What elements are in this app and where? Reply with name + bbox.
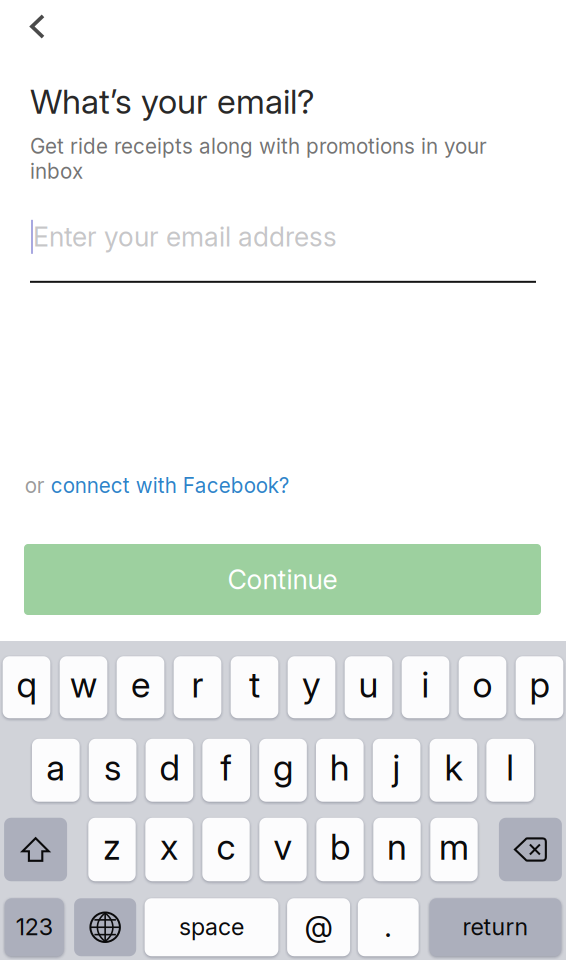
staticText: r xyxy=(191,663,203,706)
staticText: i xyxy=(421,663,429,706)
staticText: @ xyxy=(305,908,333,944)
button[interactable]: z xyxy=(88,818,136,881)
staticText: h xyxy=(330,746,350,789)
button[interactable]: u xyxy=(345,656,392,718)
staticText: p xyxy=(529,663,549,706)
staticText: t xyxy=(249,663,260,706)
button[interactable]: return xyxy=(429,898,561,956)
button[interactable]: m xyxy=(430,818,478,881)
button[interactable]: c xyxy=(202,818,250,881)
staticText: y xyxy=(302,663,321,706)
button[interactable]: Next keyboard xyxy=(74,898,136,956)
staticText: a xyxy=(46,746,65,789)
button[interactable]: b xyxy=(316,818,364,881)
button[interactable]: i xyxy=(402,656,449,718)
button[interactable]: space xyxy=(145,898,278,956)
staticText: k xyxy=(444,746,462,789)
staticText: return xyxy=(462,913,528,941)
button[interactable]: Shift xyxy=(4,818,67,881)
button[interactable]: connect with Facebook? xyxy=(51,473,290,498)
button[interactable]: n xyxy=(373,818,421,881)
staticText: l xyxy=(506,746,514,789)
button[interactable]: t xyxy=(231,656,278,718)
button[interactable]: k xyxy=(430,739,477,802)
button[interactable]: x xyxy=(145,818,193,881)
button[interactable]: f xyxy=(202,739,250,802)
staticText: What’s your email? xyxy=(30,81,315,122)
staticText: v xyxy=(273,826,292,868)
staticText: 123 xyxy=(16,913,53,941)
button[interactable]: p xyxy=(516,656,563,718)
staticText: n xyxy=(387,826,407,868)
staticText: j xyxy=(393,746,401,789)
button[interactable]: l xyxy=(486,739,534,802)
staticText: o xyxy=(472,663,492,706)
staticText: z xyxy=(103,826,121,868)
staticText: . xyxy=(384,908,392,944)
button[interactable]: y xyxy=(288,656,335,718)
staticText: w xyxy=(70,663,97,706)
button[interactable]: s xyxy=(89,739,136,802)
button[interactable]: r xyxy=(174,656,221,718)
staticText: q xyxy=(16,663,36,706)
button[interactable]: Back xyxy=(0,0,61,55)
staticText: d xyxy=(159,746,179,789)
button[interactable]: o xyxy=(459,656,506,718)
button[interactable]: . xyxy=(358,898,419,956)
button[interactable]: Continue xyxy=(24,544,541,615)
staticText: Enter your email address xyxy=(33,221,337,253)
staticText: b xyxy=(330,826,350,868)
button[interactable]: w xyxy=(60,656,107,718)
button[interactable]: e xyxy=(117,656,164,718)
button[interactable]: d xyxy=(146,739,193,802)
staticText: s xyxy=(104,746,121,789)
staticText: connect with Facebook? xyxy=(51,473,290,498)
staticText: e xyxy=(131,663,150,706)
staticText: g xyxy=(273,746,293,789)
button[interactable]: 123 xyxy=(5,898,64,956)
staticText: or xyxy=(25,473,51,498)
staticText: Get ride receipts along with promotions … xyxy=(30,134,487,184)
button[interactable]: h xyxy=(316,739,364,802)
staticText: x xyxy=(160,826,178,868)
staticText: space xyxy=(179,913,244,941)
button[interactable]: q xyxy=(3,656,50,718)
button[interactable]: a xyxy=(32,739,80,802)
button[interactable]: j xyxy=(373,739,420,802)
staticText: u xyxy=(358,663,378,706)
button[interactable]: v xyxy=(259,818,307,881)
button[interactable]: Delete xyxy=(499,818,562,881)
staticText: c xyxy=(216,826,235,868)
staticText: m xyxy=(439,826,469,868)
button[interactable]: g xyxy=(259,739,307,802)
staticText: f xyxy=(220,746,232,789)
button[interactable]: @ xyxy=(287,898,350,956)
staticText: Continue xyxy=(227,563,337,596)
